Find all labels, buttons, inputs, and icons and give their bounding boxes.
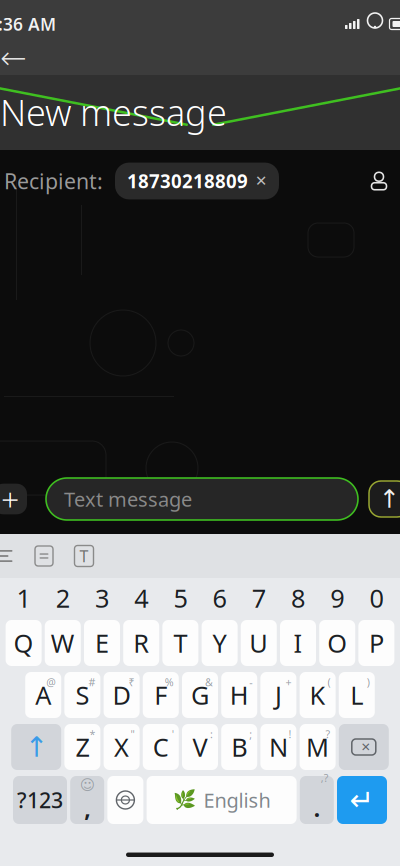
button[interactable]: : [182,724,218,770]
button[interactable]: ; [221,724,257,770]
staticText: * [89,727,95,741]
staticText: @ [46,675,56,689]
button[interactable]: ' [143,724,179,770]
button[interactable]: 8 [278,581,318,615]
button[interactable]: # [64,672,100,718]
staticText: G [191,678,209,712]
button[interactable]: - [221,672,257,718]
staticText: New message [0,88,227,136]
staticText: ☺ [80,777,95,793]
staticText: I [293,626,302,660]
button[interactable]: Backspace [339,724,389,770]
staticText: - [249,675,252,689]
staticText: 5 [173,581,187,615]
button[interactable]: Period [300,776,334,824]
staticText: + [285,675,291,689]
button[interactable]: 6 [200,581,239,615]
button[interactable]: R [123,620,159,666]
staticText: T [79,545,88,567]
button[interactable]: Add attachment [0,477,32,521]
button[interactable]: * [64,724,100,770]
staticText: N [269,730,288,764]
staticText: ; [249,727,252,741]
staticText: ↑ [25,731,48,763]
button[interactable]: Space [147,776,297,824]
button[interactable]: + [260,672,296,718]
staticText: : [210,727,213,741]
staticText: 0 [369,581,383,615]
staticText: C [153,730,169,764]
staticText: ?123 [17,786,63,814]
staticText: 3 [95,581,109,615]
button[interactable]: U [241,620,277,666]
button[interactable]: Shift [11,724,61,770]
staticText: K [310,678,326,712]
button[interactable]: & [182,672,218,718]
button[interactable]: 18730218809 [115,163,279,199]
staticText: ← [0,40,27,76]
button[interactable]: Keyboard menu [0,539,24,573]
button[interactable]: 9 [318,581,357,615]
button[interactable]: @ [25,672,61,718]
staticText: ↑ [378,485,399,513]
staticText: M [306,730,329,764]
staticText: 2:36 AM [0,12,56,35]
button[interactable]: ( [300,672,336,718]
staticText: R [133,626,149,660]
staticText: Y [213,626,227,660]
button[interactable]: Back [0,38,44,78]
staticText: ,? [321,771,329,785]
button[interactable]: Q [6,620,42,666]
staticText: ? [326,727,331,741]
staticText: Recipient: [4,167,103,195]
button[interactable]: Change language [107,776,143,824]
staticText: U [249,626,268,660]
staticText: 18730218809 [127,169,248,193]
staticText: D [113,678,131,712]
staticText: H [230,678,249,712]
button[interactable]: T [162,620,198,666]
button[interactable]: Clipboard [24,539,64,573]
button[interactable]: Enter [337,776,387,824]
button[interactable]: Text tools [64,539,104,573]
button[interactable]: Text message [46,478,358,520]
button[interactable]: ₹ [104,672,140,718]
button[interactable]: Comma and emoji [70,776,104,824]
button[interactable]: ? [300,724,336,770]
staticText: ( [328,675,331,689]
staticText: B [231,730,247,764]
button[interactable]: " [104,724,140,770]
button[interactable]: W [45,620,81,666]
button[interactable]: I [280,620,316,666]
button[interactable]: 1 [4,581,43,615]
button[interactable]: 0 [357,581,396,615]
staticText: 9 [330,581,344,615]
staticText: ↵ [349,783,374,817]
staticText: 1 [17,581,31,615]
button[interactable]: ?123 [13,776,67,824]
staticText: Text message [64,486,192,512]
staticText: 4 [134,581,148,615]
staticText: Q [14,626,34,660]
staticText: English [204,787,271,813]
staticText: ₹ [129,675,135,689]
button[interactable]: 7 [239,581,278,615]
button[interactable]: 2 [43,581,82,615]
button[interactable]: Y [202,620,238,666]
button[interactable]: P [358,620,394,666]
button[interactable]: 4 [122,581,161,615]
button[interactable]: O [319,620,355,666]
button[interactable]: ! [260,724,296,770]
button[interactable]: 3 [82,581,122,615]
staticText: Z [75,730,89,764]
button[interactable]: Choose contact [362,164,396,198]
staticText: . [314,793,320,823]
staticText: 7 [252,581,266,615]
button[interactable]: ) [339,672,375,718]
staticText: ! [288,727,291,741]
staticText: # [88,675,95,689]
button[interactable]: % [143,672,179,718]
button[interactable]: Send [366,476,400,522]
button[interactable]: 5 [161,581,200,615]
button[interactable]: E [84,620,120,666]
